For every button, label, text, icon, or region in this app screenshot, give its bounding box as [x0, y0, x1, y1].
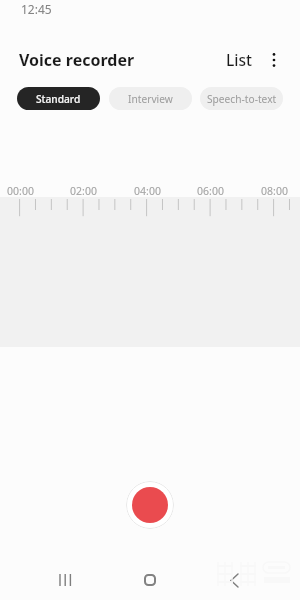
button[interactable]: Record [126, 481, 174, 529]
button[interactable]: More options [262, 48, 286, 72]
staticText: List [226, 49, 252, 70]
staticText: Interview [128, 92, 173, 106]
staticText: 08:00 [261, 184, 288, 198]
staticText: Standard [36, 92, 81, 106]
staticText: 04:00 [134, 184, 161, 198]
staticText: Speech-to-text [207, 92, 277, 106]
staticText: 02:00 [70, 184, 97, 198]
button[interactable]: List [218, 45, 259, 73]
button[interactable]: Speech-to-text [200, 87, 283, 110]
button[interactable]: Recent apps [49, 564, 81, 596]
staticText: 06:00 [197, 184, 224, 198]
staticText: 00:00 [7, 184, 34, 198]
staticText: Voice recorder [19, 49, 135, 71]
staticText: 12:45 [21, 1, 52, 17]
button[interactable]: Standard [17, 87, 100, 110]
button[interactable]: Home [134, 564, 166, 596]
button[interactable]: Interview [109, 87, 192, 110]
button[interactable]: Back [218, 564, 250, 596]
